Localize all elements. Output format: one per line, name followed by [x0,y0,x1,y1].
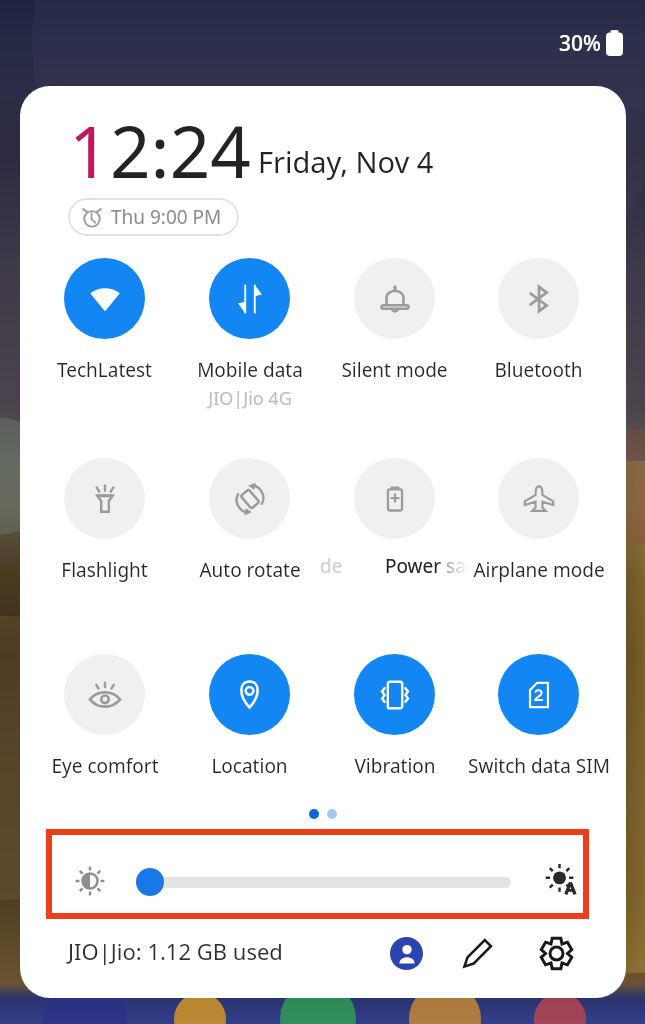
button[interactable]: Vibration [322,654,467,779]
button[interactable]: Auto rotate [177,458,322,583]
staticText: JIO|Jio 4G [208,386,292,411]
staticText: 2:24 [110,102,251,199]
button[interactable] [322,458,467,583]
staticText: Flashlight [61,557,148,583]
staticText: Switch data SIM [468,753,610,779]
staticText: TechLatest [57,357,152,383]
staticText: Airplane mode [473,557,605,583]
staticText: de [320,553,343,579]
staticText: Auto rotate [199,557,301,583]
staticText: Vibration [354,753,436,779]
button[interactable]: Airplane mode [466,458,611,583]
button[interactable]: TechLatest [32,258,177,383]
staticText: Mobile data [197,357,303,383]
button[interactable]: User account [390,937,423,970]
button[interactable]: Auto brightness [546,864,579,897]
button[interactable]: Switch data SIM [466,654,611,779]
button[interactable]: Flashlight [32,458,177,583]
staticText: Friday, Nov 4 [258,142,434,181]
staticText: Power sa [385,553,466,579]
staticText: 30% [559,29,601,58]
staticText: JIO|Jio: 1.12 GB used [68,936,283,966]
button[interactable]: Location [177,654,322,779]
button[interactable]: Thu 9:00 PM [68,198,239,236]
button[interactable]: Lower brightness [74,865,106,897]
button[interactable]: Mobile data [177,258,322,411]
button[interactable]: Silent mode [322,258,467,383]
staticText: Eye comfort [51,753,159,779]
button[interactable]: Brightness [136,868,164,896]
button[interactable]: Eye comfort [32,654,177,779]
button[interactable]: de [316,553,466,581]
button[interactable]: Edit [460,935,496,971]
staticText: Thu 9:00 PM [111,204,222,230]
staticText: Silent mode [341,357,448,383]
staticText: Bluetooth [494,357,583,383]
button[interactable]: Settings [538,935,574,971]
staticText: Location [211,753,288,779]
button[interactable]: Bluetooth [466,258,611,383]
staticText: 1 [69,102,110,199]
